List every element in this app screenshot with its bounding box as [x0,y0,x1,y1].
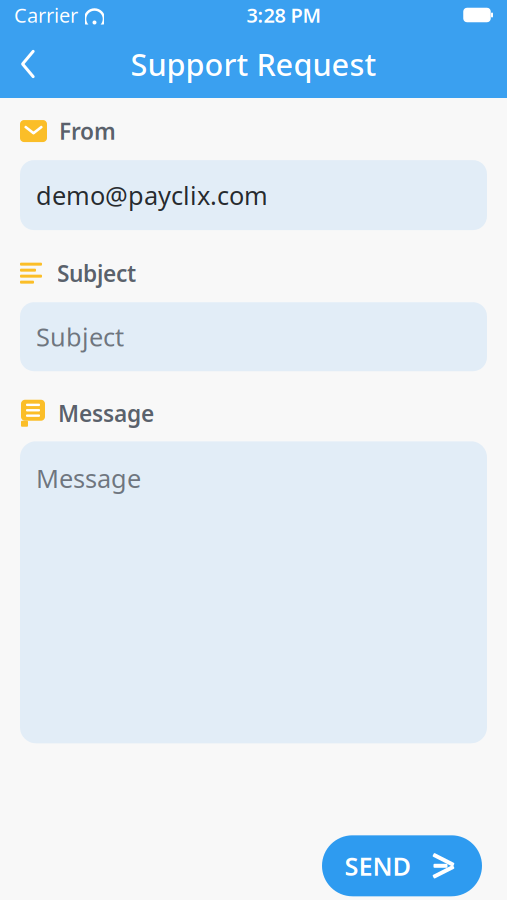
staticText: Carrier [14,2,78,28]
staticText: demo@payclix.com [36,178,268,212]
button[interactable]: Subject [20,302,487,371]
staticText: 3:28 PM [246,2,321,28]
button[interactable]: demo@payclix.com [20,160,487,230]
button[interactable]: Back [0,30,56,98]
staticText: From [59,116,116,146]
button[interactable]: Message [20,441,487,743]
staticText: Message [58,398,154,428]
staticText: SEND [344,849,411,883]
staticText: Message [36,461,141,495]
staticText: Support Request [130,44,376,84]
staticText: Subject [57,258,136,288]
staticText: Subject [36,320,124,353]
button[interactable]: SEND [322,835,482,896]
